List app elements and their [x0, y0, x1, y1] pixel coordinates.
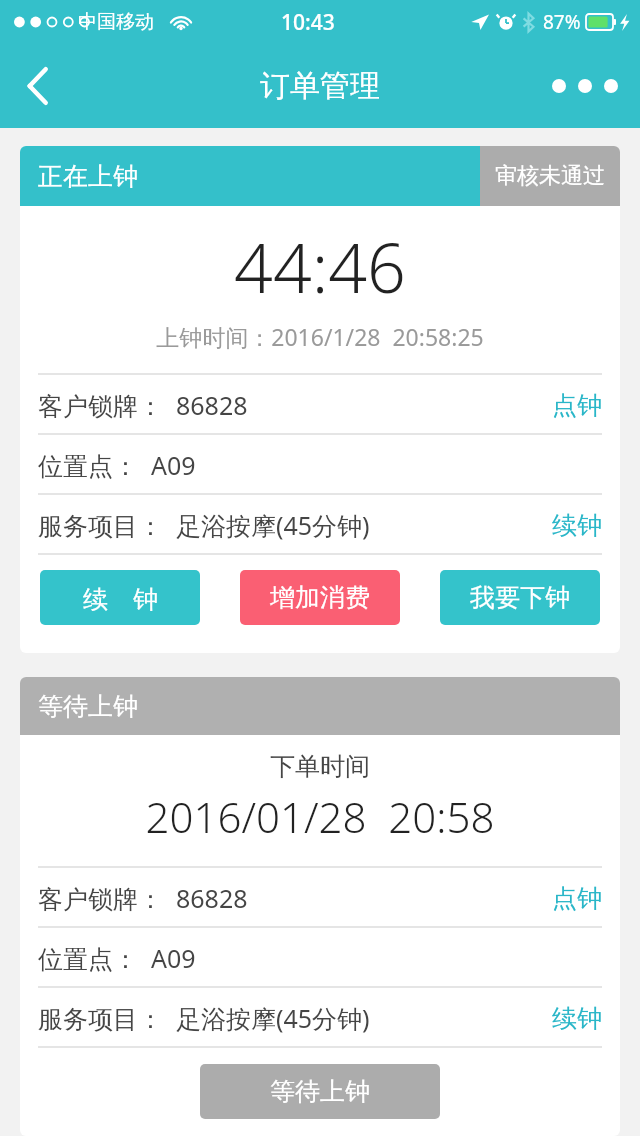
staticText: 上钟时间：2016/1/28 20:58:25 — [20, 321, 620, 352]
staticText: 位置点： A09 — [38, 941, 196, 975]
staticText: 等待上钟 — [38, 691, 138, 722]
button[interactable]: 服务项目： 足浴按摩(45分钟) — [20, 988, 620, 1048]
button[interactable]: 客户锁牌： 86828 — [20, 375, 620, 435]
button[interactable]: 正在上钟 — [20, 146, 480, 206]
staticText: 客户锁牌： 86828 — [38, 388, 248, 422]
button[interactable]: Back — [6, 54, 70, 118]
staticText: 续钟 — [552, 510, 602, 541]
button[interactable]: 续 钟 — [40, 570, 200, 625]
button[interactable]: 位置点： A09 — [20, 928, 620, 988]
button[interactable]: 服务项目： 足浴按摩(45分钟) — [20, 495, 620, 555]
staticText: 客户锁牌： 86828 — [38, 881, 248, 915]
button[interactable]: 等待上钟 — [20, 677, 620, 735]
staticText: 续钟 — [552, 1003, 602, 1034]
staticText: 等待上钟 — [270, 1076, 370, 1107]
button[interactable]: 审核未通过 — [480, 146, 620, 206]
staticText: 44:46 — [20, 220, 620, 313]
staticText: 订单管理 — [260, 67, 380, 105]
staticText: 正在上钟 — [38, 161, 138, 192]
staticText: 中国移动 — [78, 10, 154, 34]
button[interactable]: 等待上钟 — [200, 1064, 440, 1119]
staticText: 服务项目： 足浴按摩(45分钟) — [38, 508, 370, 542]
staticText: 点钟 — [552, 883, 602, 914]
staticText: 我要下钟 — [470, 582, 570, 613]
staticText: 增加消费 — [270, 582, 370, 613]
staticText: 审核未通过 — [495, 162, 605, 190]
staticText: 位置点： A09 — [38, 448, 196, 482]
button[interactable]: 我要下钟 — [440, 570, 600, 625]
staticText: 服务项目： 足浴按摩(45分钟) — [38, 1001, 370, 1035]
staticText: 10:43 — [281, 8, 335, 37]
button[interactable]: 增加消费 — [240, 570, 400, 625]
staticText: 87% — [543, 9, 581, 35]
button[interactable]: 客户锁牌： 86828 — [20, 868, 620, 928]
staticText: 2016/01/28 20:58 — [20, 788, 620, 845]
staticText: 点钟 — [552, 390, 602, 421]
staticText: 续 钟 — [83, 581, 158, 615]
button[interactable]: 位置点： A09 — [20, 435, 620, 495]
staticText: 下单时间 — [20, 751, 620, 782]
button[interactable]: More options — [544, 58, 626, 114]
